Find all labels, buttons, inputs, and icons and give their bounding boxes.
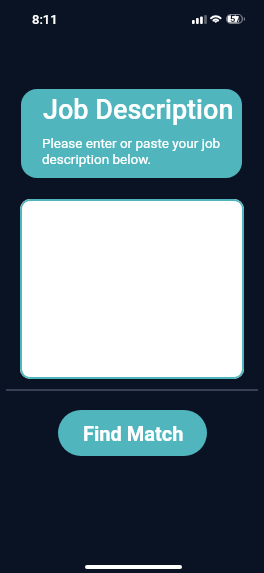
- staticText: Job Description: [43, 94, 234, 126]
- staticText: 57: [230, 13, 241, 24]
- staticText: Please enter or paste your job descripti…: [42, 135, 221, 167]
- button[interactable]: Job description input: [20, 199, 244, 379]
- button[interactable]: Find Match: [58, 410, 207, 456]
- other: Cellular signal: [192, 15, 205, 24]
- staticText: 8:11: [32, 12, 58, 27]
- other: Wi-Fi: [210, 14, 222, 23]
- staticText: Find Match: [83, 422, 184, 445]
